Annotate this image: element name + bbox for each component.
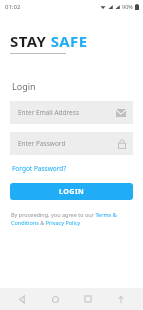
other: Password <box>118 139 126 149</box>
staticText: Enter Password <box>18 139 118 148</box>
button[interactable]: Recent apps <box>77 288 99 310</box>
staticText: LOGIN <box>59 187 85 197</box>
button[interactable]: Back <box>11 288 33 310</box>
button[interactable]: By proceeding, you agree to our Terms & … <box>11 211 132 227</box>
other: Email <box>116 109 126 117</box>
staticText: 01:02 <box>5 3 21 11</box>
staticText: Enter Email Address <box>18 108 116 117</box>
button[interactable]: Home <box>44 288 66 310</box>
button[interactable]: LOGIN <box>10 183 133 200</box>
button[interactable]: Enter Password <box>10 132 133 155</box>
staticText: 90% <box>122 3 133 10</box>
button[interactable]: Keyboard <box>110 288 132 310</box>
button[interactable]: Enter Email Address <box>10 101 133 124</box>
staticText: STAY SAFE <box>10 31 88 51</box>
button[interactable]: Forgot Password? <box>12 164 67 173</box>
staticText: Login <box>12 80 36 92</box>
